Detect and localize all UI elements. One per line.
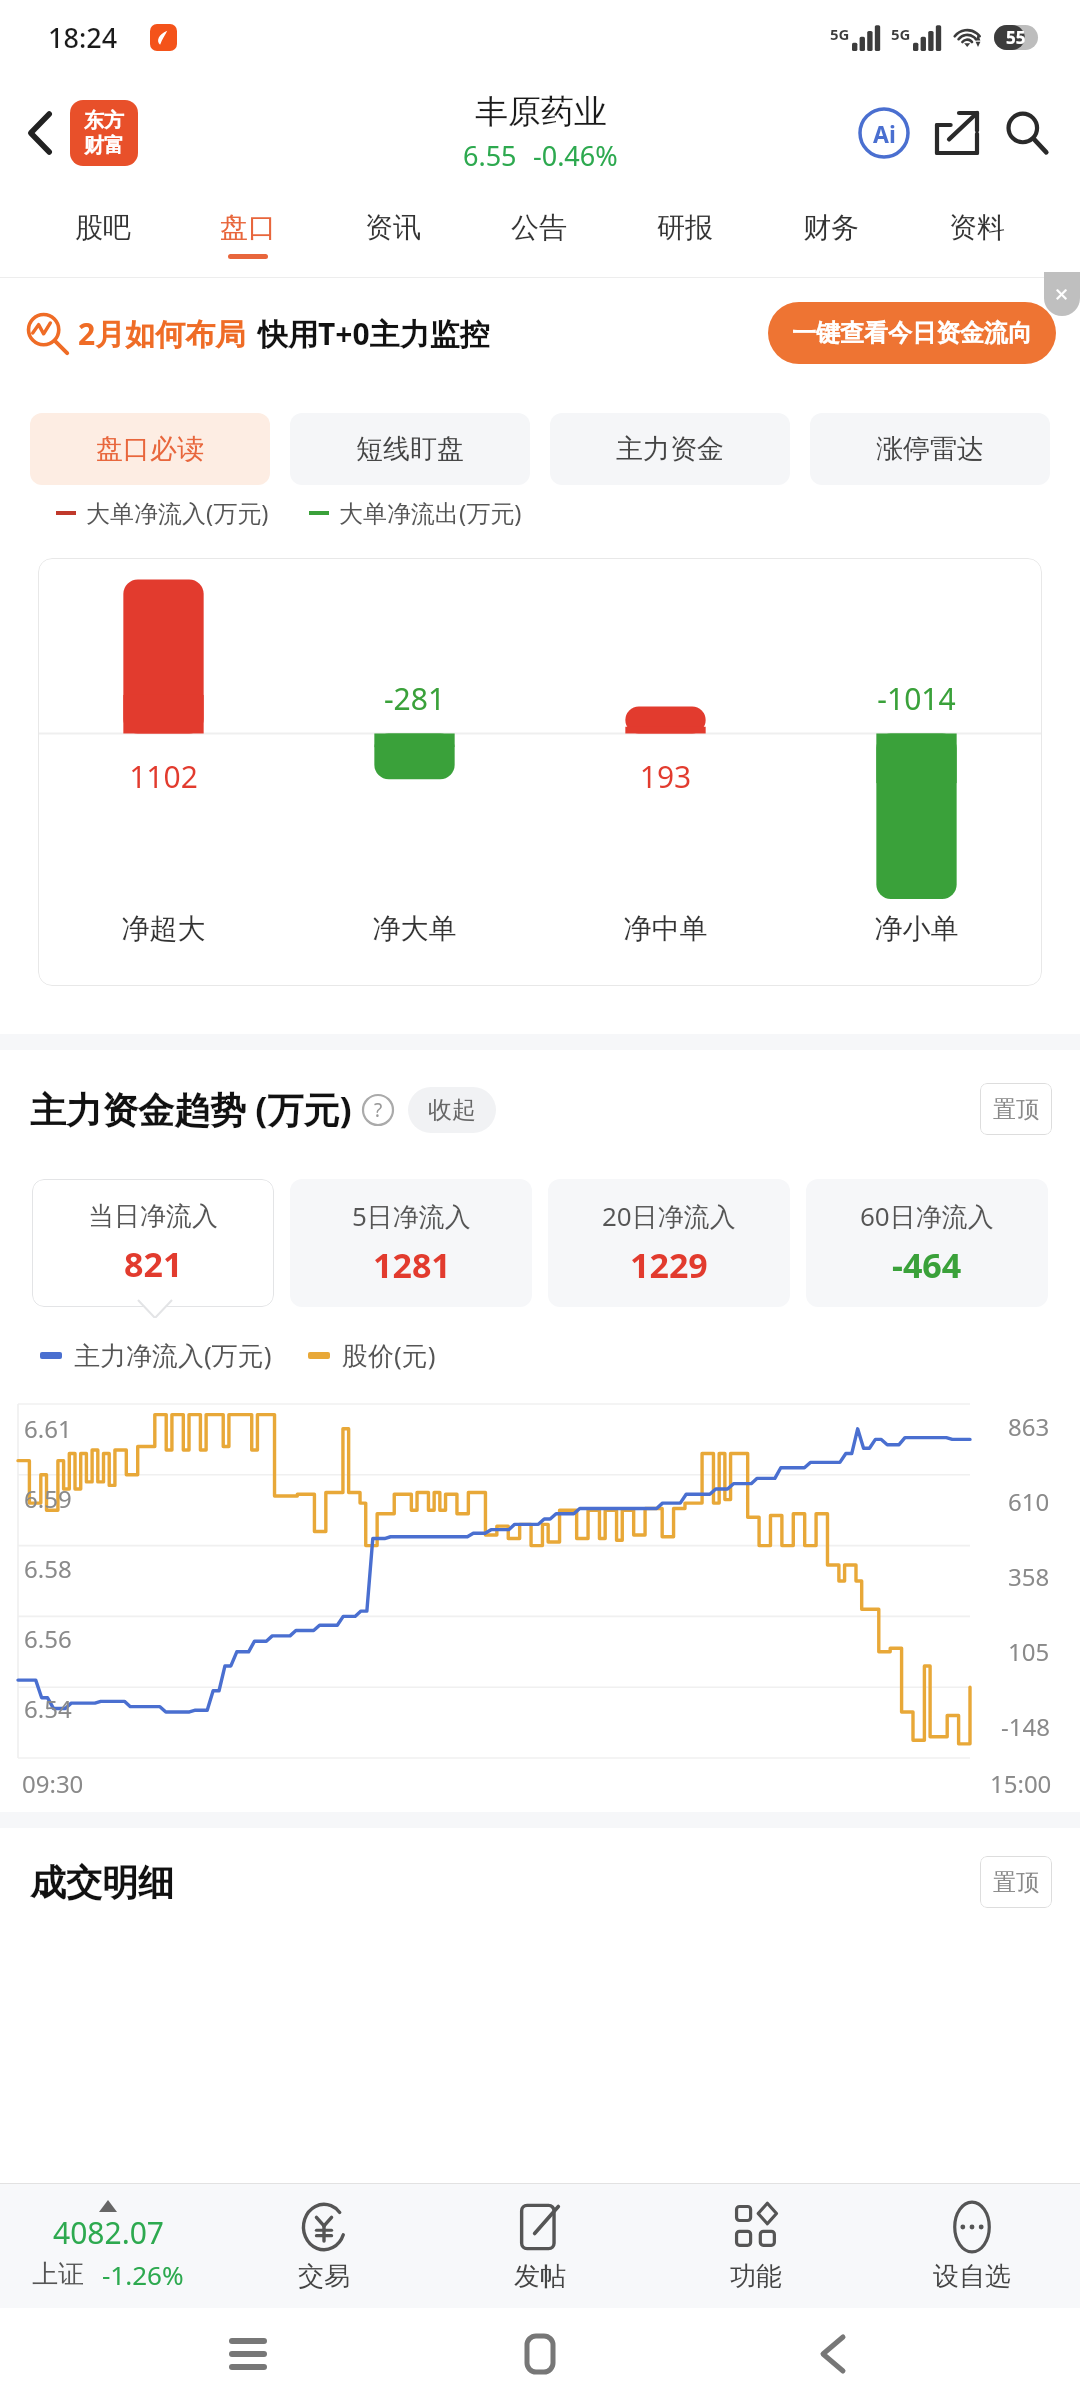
staticText: 财富 <box>84 133 124 158</box>
staticText: 股价(元) <box>342 1337 436 1373</box>
button[interactable]: 资料 <box>904 190 1050 278</box>
staticText: 60日净流入 <box>860 1198 994 1234</box>
button[interactable]: Back <box>788 2309 878 2399</box>
button[interactable]: 设自选 <box>864 2184 1080 2308</box>
staticText: -1014 <box>791 678 1042 719</box>
staticText: 5G <box>891 24 911 44</box>
button[interactable]: 置顶 <box>980 1856 1052 1908</box>
staticText: 一键查看今日资金流向 <box>792 318 1032 348</box>
staticText: 610 <box>1008 1485 1050 1518</box>
staticText: 358 <box>1008 1560 1050 1593</box>
staticText: 6.58 <box>24 1552 72 1585</box>
staticText: 净中单 <box>540 911 791 946</box>
button[interactable]: Help <box>362 1094 394 1126</box>
staticText: 交易 <box>298 2260 350 2293</box>
staticText: 55 <box>1006 26 1026 49</box>
staticText: 盘口必读 <box>96 432 204 466</box>
button[interactable]: 功能 <box>648 2184 864 2308</box>
button[interactable]: 股吧 <box>30 190 175 278</box>
staticText: 净超大 <box>38 911 289 946</box>
staticText: 短线盯盘 <box>356 432 464 466</box>
staticText: 5G <box>830 24 850 44</box>
button[interactable]: 置顶 <box>980 1083 1052 1135</box>
button[interactable]: AI assistant <box>852 101 916 165</box>
staticText: 置顶 <box>993 1868 1039 1897</box>
button[interactable]: 5日净流入 <box>290 1179 532 1307</box>
staticText: 涨停雷达 <box>876 432 984 466</box>
button[interactable]: Home <box>495 2309 585 2399</box>
staticText: 主力资金趋势 (万元) <box>30 1085 352 1134</box>
button[interactable]: 盘口 <box>175 190 320 278</box>
staticText: -281 <box>289 678 540 719</box>
staticText: 设自选 <box>933 2260 1011 2293</box>
button[interactable]: 公告 <box>466 190 612 278</box>
button[interactable]: 涨停雷达 <box>810 413 1050 485</box>
button[interactable]: 东方财富 Home <box>70 100 138 166</box>
staticText: 6.55 <box>463 137 517 174</box>
button[interactable]: 收起 <box>408 1087 496 1133</box>
button[interactable]: Close ad <box>1044 272 1080 316</box>
staticText: 6.59 <box>24 1482 72 1515</box>
staticText: 上证 <box>32 2258 84 2291</box>
button[interactable]: 交易 <box>216 2184 432 2308</box>
staticText: 4082.07 <box>53 2212 164 2253</box>
staticText: 1281 <box>373 1242 451 1288</box>
staticText: 1229 <box>630 1242 708 1288</box>
staticText: 863 <box>1008 1410 1050 1443</box>
staticText: Ai <box>873 118 896 149</box>
staticText: 大单净流入(万元) <box>86 496 269 529</box>
staticText: 盘口 <box>220 210 276 245</box>
button[interactable]: 主力资金 <box>550 413 790 485</box>
staticText: 资料 <box>949 210 1005 245</box>
button[interactable]: Recents <box>203 2309 293 2399</box>
staticText: 09:30 <box>22 1767 84 1800</box>
staticText: 105 <box>1008 1635 1050 1668</box>
staticText: 当日净流入 <box>88 1200 218 1233</box>
button[interactable]: 一键查看今日资金流向 <box>768 302 1056 364</box>
button[interactable]: 60日净流入 <box>806 1179 1048 1307</box>
staticText: ? <box>374 1097 383 1123</box>
staticText: 财务 <box>803 210 859 245</box>
button[interactable]: 资讯 <box>320 190 466 278</box>
staticText: 6.56 <box>24 1622 72 1655</box>
button[interactable]: 盘口必读 <box>30 413 270 485</box>
button[interactable]: 当日净流入 <box>32 1179 274 1307</box>
staticText: 2月如何布局 <box>78 313 246 354</box>
staticText: 193 <box>540 756 791 797</box>
staticText: -1.26% <box>102 2257 184 2292</box>
staticText: 大单净流出(万元) <box>339 496 522 529</box>
button[interactable]: 短线盯盘 <box>290 413 530 485</box>
button[interactable]: 20日净流入 <box>548 1179 790 1307</box>
staticText: 发帖 <box>514 2260 566 2293</box>
button[interactable]: 4082.07 <box>0 2184 216 2308</box>
button[interactable]: Search <box>996 102 1058 164</box>
button[interactable]: Back <box>12 105 68 161</box>
staticText: 置顶 <box>993 1095 1039 1124</box>
button[interactable]: Share <box>926 102 988 164</box>
staticText: 丰原药业 <box>475 91 607 133</box>
staticText: 收起 <box>428 1095 476 1125</box>
staticText: -0.46% <box>533 137 618 174</box>
staticText: 主力资金 <box>616 432 724 466</box>
staticText: 5日净流入 <box>352 1198 471 1234</box>
staticText: 净小单 <box>791 911 1042 946</box>
staticText: ✕ <box>1054 284 1070 305</box>
staticText: -464 <box>892 1242 962 1288</box>
staticText: 成交明细 <box>30 1860 174 1905</box>
staticText: 18:24 <box>48 19 118 56</box>
staticText: 资讯 <box>365 210 421 245</box>
staticText: 1102 <box>38 756 289 797</box>
staticText: -148 <box>1001 1710 1050 1743</box>
staticText: 6.54 <box>24 1692 72 1725</box>
staticText: 功能 <box>730 2260 782 2293</box>
staticText: 东方 <box>84 108 124 133</box>
button[interactable]: 财务 <box>758 190 904 278</box>
button[interactable]: 研报 <box>612 190 758 278</box>
staticText: 净大单 <box>289 911 540 946</box>
staticText: 公告 <box>511 210 567 245</box>
staticText: 6.61 <box>24 1412 72 1445</box>
staticText: 主力净流入(万元) <box>74 1337 272 1373</box>
staticText: 20日净流入 <box>602 1198 736 1234</box>
staticText: 15:00 <box>990 1767 1052 1800</box>
button[interactable]: 发帖 <box>432 2184 648 2308</box>
